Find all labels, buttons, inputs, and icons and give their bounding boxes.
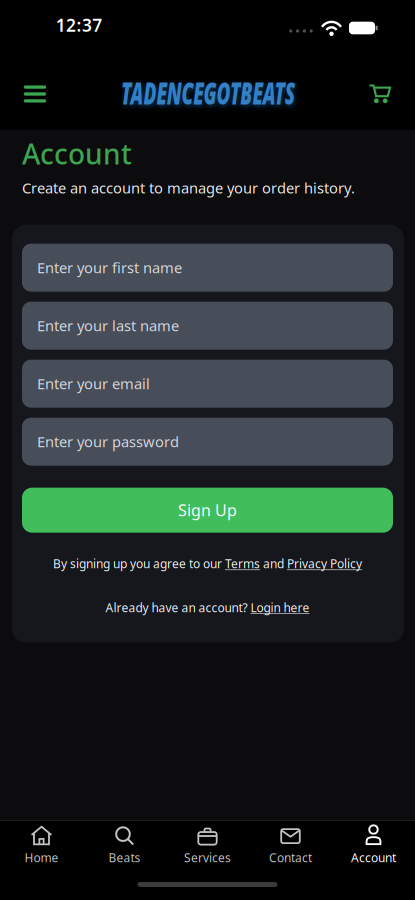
staticText: Enter your email bbox=[37, 374, 150, 393]
staticText: Enter your last name bbox=[37, 316, 179, 335]
button[interactable]: Sign Up bbox=[22, 488, 393, 533]
staticText: Account bbox=[22, 135, 132, 172]
staticText: By signing up you agree to our bbox=[53, 556, 225, 572]
staticText: 12:37 bbox=[56, 13, 102, 36]
button[interactable]: Services bbox=[166, 823, 249, 867]
staticText: Enter your first name bbox=[37, 258, 182, 277]
staticText: Login here bbox=[250, 600, 309, 615]
button[interactable]: Enter your first name bbox=[22, 244, 393, 292]
button[interactable]: Menu bbox=[18, 78, 52, 110]
button[interactable]: Enter your password bbox=[22, 418, 393, 466]
staticText: and bbox=[260, 556, 287, 572]
staticText: Sign Up bbox=[178, 499, 237, 521]
staticText: Beats bbox=[108, 850, 140, 866]
staticText: Privacy Policy bbox=[287, 556, 362, 572]
button[interactable]: Enter your email bbox=[22, 360, 393, 408]
staticText: Home bbox=[24, 850, 58, 866]
staticText: Account bbox=[351, 850, 396, 866]
button[interactable]: Terms bbox=[225, 556, 260, 572]
staticText: Terms bbox=[225, 556, 260, 572]
staticText: Create an account to manage your order h… bbox=[22, 178, 355, 198]
button[interactable]: Account bbox=[332, 823, 415, 867]
button[interactable]: Cart bbox=[362, 76, 398, 110]
staticText: Contact bbox=[269, 850, 312, 866]
button[interactable]: Privacy Policy bbox=[287, 556, 362, 572]
button[interactable]: Login here bbox=[250, 600, 309, 615]
staticText: Enter your password bbox=[37, 432, 179, 451]
staticText: Already have an account? bbox=[105, 600, 250, 615]
button[interactable]: Beats bbox=[83, 823, 166, 867]
staticText: TADENCEGOTBEATS bbox=[73, 73, 343, 112]
button[interactable]: Contact bbox=[249, 823, 332, 867]
button[interactable]: Enter your last name bbox=[22, 302, 393, 350]
button[interactable]: Home bbox=[0, 823, 83, 867]
staticText: Services bbox=[184, 850, 231, 866]
